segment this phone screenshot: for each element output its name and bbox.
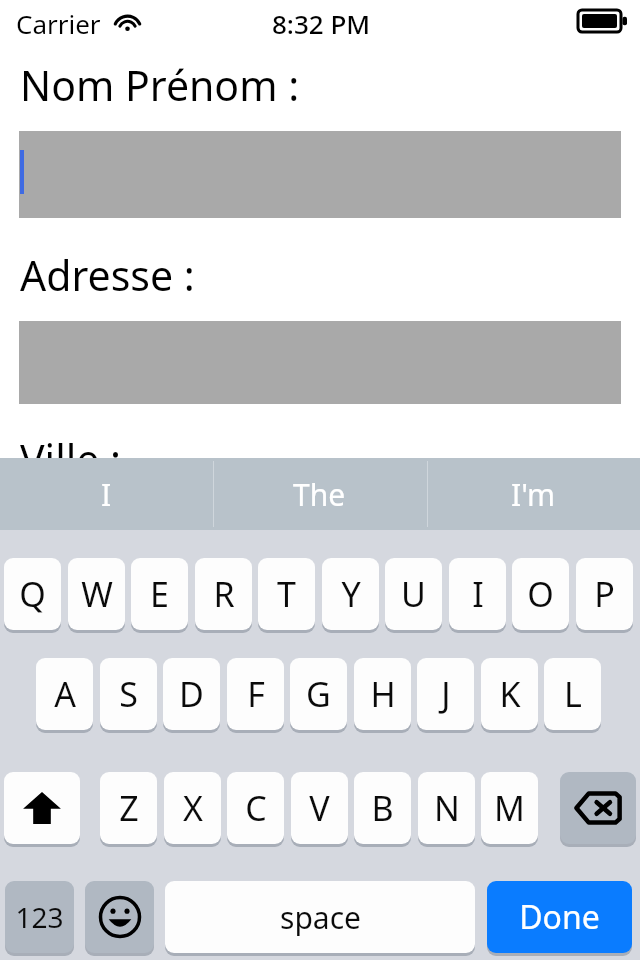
staticText: F: [247, 671, 265, 717]
staticText: I: [101, 474, 112, 515]
staticText: N: [434, 785, 460, 831]
staticText: J: [441, 671, 451, 717]
button[interactable]: D: [163, 658, 220, 730]
button[interactable]: M: [481, 772, 538, 844]
button[interactable]: I'm: [427, 458, 640, 530]
button[interactable]: U: [385, 558, 442, 630]
staticText: W: [81, 571, 113, 617]
staticText: 8:32 PM: [272, 6, 371, 41]
staticText: Nom Prénom :: [20, 57, 300, 113]
staticText: G: [306, 671, 331, 717]
staticText: L: [564, 671, 582, 717]
staticText: T: [277, 571, 296, 617]
button[interactable]: H: [354, 658, 411, 730]
staticText: Carrier: [16, 6, 101, 41]
staticText: H: [370, 671, 396, 717]
button[interactable]: I: [449, 558, 506, 630]
button[interactable]: R: [195, 558, 252, 630]
staticText: R: [213, 571, 235, 617]
staticText: A: [54, 671, 76, 717]
staticText: 123: [15, 898, 64, 936]
button[interactable]: O: [512, 558, 569, 630]
button[interactable]: [19, 131, 621, 218]
button[interactable]: Done: [487, 881, 632, 953]
button[interactable]: L: [544, 658, 601, 730]
button[interactable]: X: [164, 772, 221, 844]
staticText: Z: [119, 785, 139, 831]
button[interactable]: Y: [322, 558, 379, 630]
button[interactable]: K: [481, 658, 538, 730]
staticText: M: [494, 785, 525, 831]
staticText: P: [594, 571, 615, 617]
button[interactable]: F: [227, 658, 284, 730]
button[interactable]: W: [68, 558, 125, 630]
button[interactable]: N: [418, 772, 475, 844]
staticText: O: [527, 571, 554, 617]
button[interactable]: space: [165, 881, 475, 953]
staticText: Adresse :: [20, 247, 195, 303]
staticText: Y: [341, 571, 361, 617]
staticText: space: [280, 897, 361, 938]
staticText: K: [499, 671, 521, 717]
staticText: Done: [519, 895, 600, 939]
staticText: S: [119, 671, 138, 717]
button[interactable]: C: [227, 772, 284, 844]
button[interactable]: Emoji: [85, 881, 154, 953]
button[interactable]: E: [131, 558, 188, 630]
button[interactable]: Z: [100, 772, 157, 844]
button[interactable]: The: [213, 458, 426, 530]
staticText: I: [472, 571, 484, 617]
button[interactable]: J: [417, 658, 474, 730]
button[interactable]: I: [0, 458, 213, 530]
button[interactable]: 123: [5, 881, 74, 953]
staticText: X: [183, 785, 203, 831]
button[interactable]: Shift: [4, 772, 80, 844]
button[interactable]: P: [576, 558, 633, 630]
staticText: D: [179, 671, 204, 717]
button[interactable]: S: [100, 658, 157, 730]
staticText: I'm: [511, 474, 556, 515]
staticText: E: [150, 571, 169, 617]
staticText: The: [293, 474, 346, 515]
staticText: B: [371, 785, 394, 831]
staticText: V: [309, 785, 330, 831]
staticText: Ville :: [20, 431, 122, 487]
button[interactable]: G: [290, 658, 347, 730]
staticText: Q: [19, 571, 46, 617]
button[interactable]: V: [291, 772, 348, 844]
button[interactable]: B: [354, 772, 411, 844]
button[interactable]: Backspace: [560, 772, 636, 844]
button[interactable]: T: [258, 558, 315, 630]
staticText: U: [401, 571, 426, 617]
button[interactable]: A: [36, 658, 93, 730]
button[interactable]: Q: [4, 558, 61, 630]
staticText: C: [245, 785, 267, 831]
